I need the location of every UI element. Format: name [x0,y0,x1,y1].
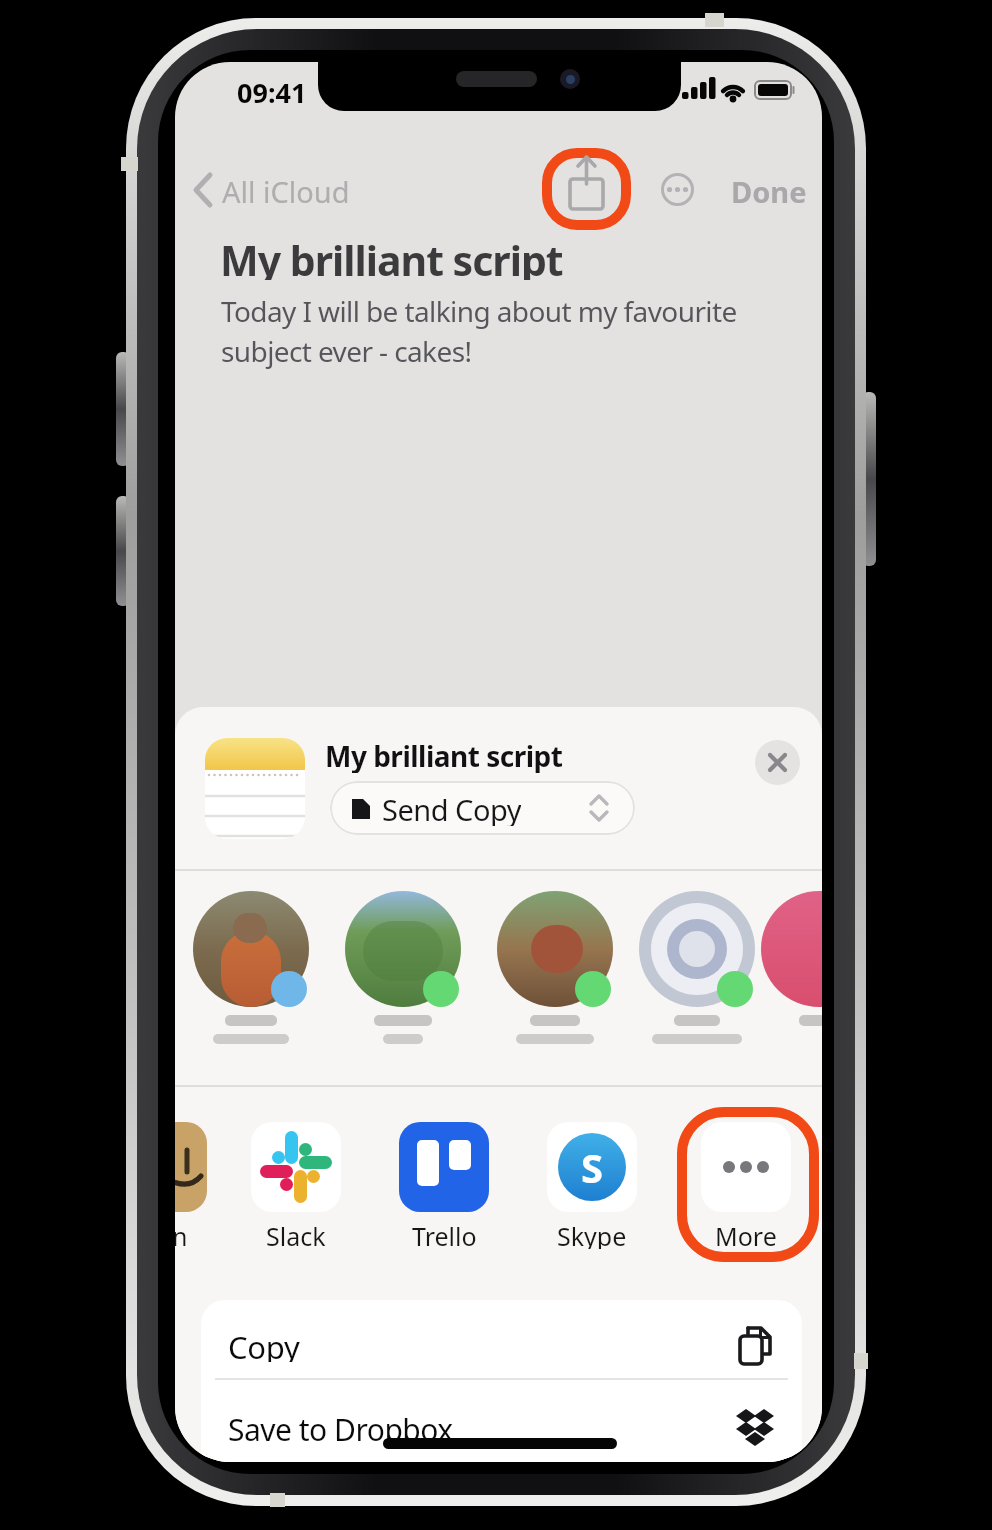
staticText: Slack [266,1219,326,1249]
button[interactable] [639,891,755,1007]
staticText: Trello [412,1219,477,1249]
staticText: Save to Dropbox [228,1409,453,1445]
button[interactable] [399,1122,489,1212]
staticText: 09:41 [237,74,307,108]
button[interactable] [175,1122,207,1212]
button[interactable]: Copy [228,1326,428,1362]
button[interactable]: Save to Dropbox [228,1409,528,1445]
button[interactable] [755,740,800,785]
staticText: Skype [557,1219,627,1249]
button[interactable]: Done [731,172,811,208]
button[interactable] [542,148,631,230]
button[interactable] [193,891,309,1007]
staticText: Today I will be talking about my favouri… [221,292,737,371]
button[interactable] [661,173,694,206]
button[interactable] [345,891,461,1007]
button[interactable] [192,173,214,207]
staticText: n [175,1219,188,1249]
button[interactable]: Send Copy [330,781,635,835]
button[interactable] [251,1122,341,1212]
button[interactable] [701,1122,791,1212]
staticText: My brilliant script [325,737,563,773]
staticText: Send Copy [382,790,521,826]
button[interactable]: S [547,1122,637,1212]
button[interactable] [761,891,822,1007]
staticText: My brilliant script [220,232,563,280]
button[interactable]: All iCloud [222,172,402,208]
staticText: S [581,1140,604,1194]
staticText: More [715,1219,777,1249]
staticText: Copy [228,1326,300,1362]
button[interactable] [497,891,613,1007]
staticText: All iCloud [222,172,350,208]
staticText: Done [731,172,807,208]
